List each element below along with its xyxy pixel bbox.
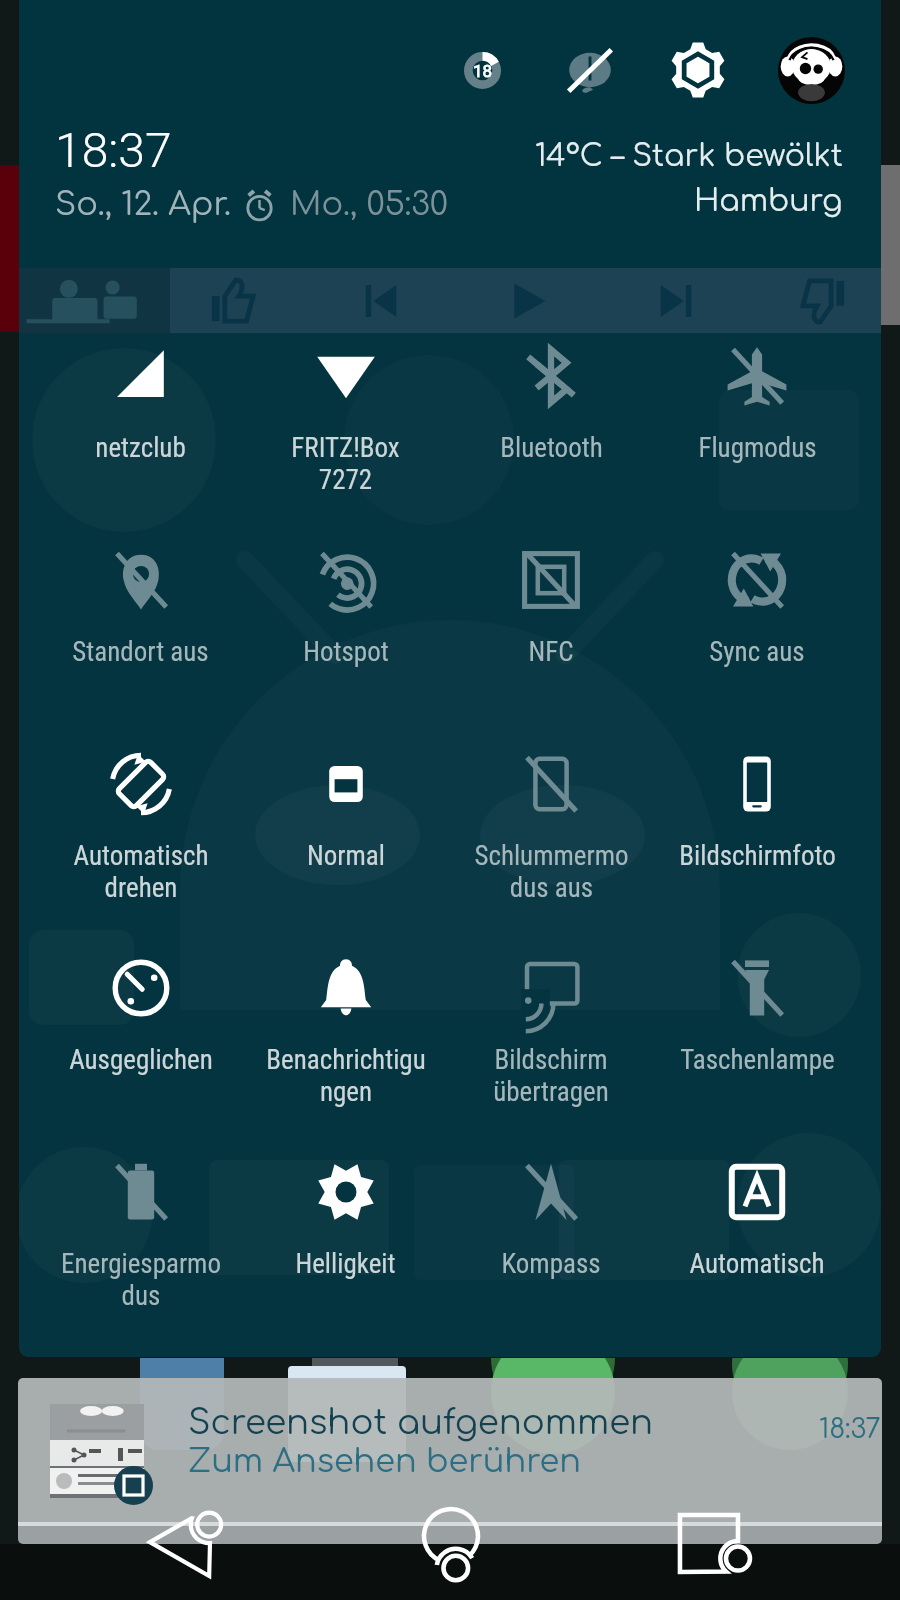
button[interactable]: netzclub xyxy=(38,333,243,537)
staticText: NFC xyxy=(528,636,574,668)
button[interactable]: Thumbs down xyxy=(779,268,867,333)
staticText: Kompass xyxy=(501,1248,601,1280)
button[interactable]: NFC xyxy=(448,537,654,741)
button[interactable]: Back xyxy=(120,1483,240,1600)
button[interactable]: Benachrichtigu ngen xyxy=(243,945,448,1149)
button[interactable]: Ausgeglichen xyxy=(38,945,243,1149)
staticText: 14°C – Stark bewölkt xyxy=(535,140,843,173)
staticText: Benachrichtigu ngen xyxy=(266,1044,426,1108)
button[interactable]: Bluetooth xyxy=(448,333,654,537)
button[interactable]: FRITZ!Box 7272 xyxy=(243,333,448,537)
button[interactable]: Thumbs up xyxy=(189,268,277,333)
button[interactable]: Standort aus xyxy=(38,537,243,741)
button[interactable]: Taschenlampe xyxy=(654,945,860,1149)
button[interactable]: Automatisch xyxy=(654,1149,860,1353)
button[interactable]: Helligkeit xyxy=(243,1149,448,1353)
staticText: Bildschirm übertragen xyxy=(493,1044,609,1108)
staticText: Automatisch drehen xyxy=(73,840,209,904)
staticText: So., 12. Apr. xyxy=(55,187,231,223)
staticText: Taschenlampe xyxy=(680,1044,835,1076)
button[interactable]: Battery 18 percent xyxy=(451,39,513,101)
staticText: Helligkeit xyxy=(295,1248,396,1280)
staticText: Mo., 05:30 xyxy=(290,187,449,223)
button[interactable]: Settings xyxy=(667,39,729,101)
staticText: Ausgeglichen xyxy=(69,1044,213,1076)
staticText: 18:37 xyxy=(55,122,172,178)
staticText: Screenshot aufgenommen xyxy=(188,1404,654,1442)
staticText: Zum Ansehen berühren xyxy=(188,1444,581,1480)
staticText: Standort aus xyxy=(72,636,209,668)
button[interactable]: Bildschirmfoto xyxy=(654,741,860,945)
button[interactable]: Play xyxy=(484,268,572,333)
button[interactable]: Bildschirm übertragen xyxy=(448,945,654,1149)
staticText: 18:37 xyxy=(819,1414,881,1444)
button[interactable]: Schlummermo dus aus xyxy=(448,741,654,945)
staticText: Schlummermo dus aus xyxy=(474,840,629,904)
button[interactable]: Automatisch drehen xyxy=(38,741,243,945)
staticText: Bluetooth xyxy=(500,432,603,464)
staticText: FRITZ!Box 7272 xyxy=(291,432,400,496)
button[interactable]: Kompass xyxy=(448,1149,654,1353)
staticText: Normal xyxy=(307,840,385,872)
button[interactable]: Energiesparmo dus xyxy=(38,1149,243,1353)
button[interactable]: Next track xyxy=(632,268,720,333)
staticText: Hotspot xyxy=(303,636,389,668)
staticText: Bildschirmfoto xyxy=(679,840,836,872)
button[interactable]: User profile xyxy=(775,34,847,106)
staticText: netzclub xyxy=(95,432,186,464)
button[interactable]: Flugmodus xyxy=(654,333,860,537)
staticText: Flugmodus xyxy=(698,432,817,464)
staticText: Hamburg xyxy=(694,185,843,218)
staticText: 18 xyxy=(473,61,493,81)
staticText: Energiesparmo dus xyxy=(61,1248,221,1312)
button[interactable]: Screenshot aufgenommen xyxy=(18,1378,882,1544)
button[interactable]: Recent apps xyxy=(650,1483,770,1600)
button[interactable]: Battery saver off xyxy=(559,39,621,101)
button[interactable]: Previous track xyxy=(337,268,425,333)
staticText: Sync aus xyxy=(709,636,805,668)
button[interactable]: Hotspot xyxy=(243,537,448,741)
button[interactable]: Normal xyxy=(243,741,448,945)
staticText: Automatisch xyxy=(689,1248,825,1280)
button[interactable]: Home xyxy=(390,1483,510,1600)
button[interactable]: Sync aus xyxy=(654,537,860,741)
